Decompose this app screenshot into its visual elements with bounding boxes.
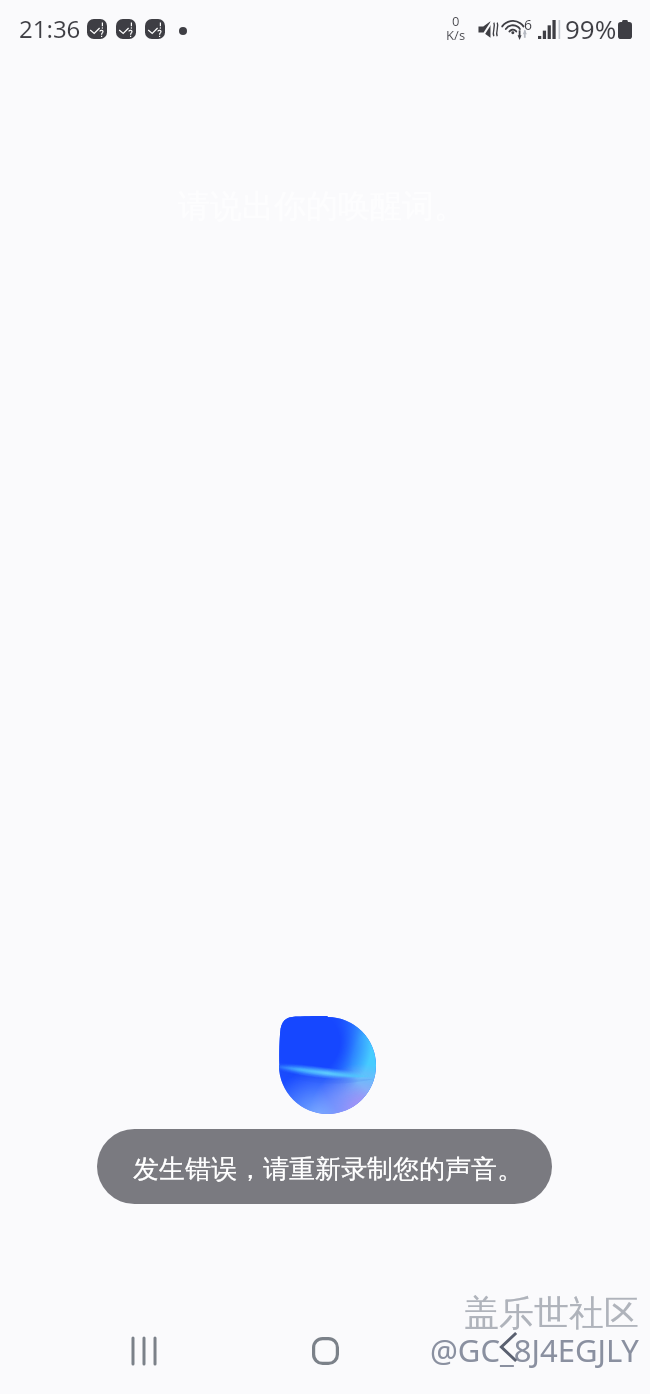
button[interactable]: Recents [113, 1321, 173, 1381]
button[interactable]: Voice assistant [279, 1016, 376, 1115]
staticText: 发生错误，请重新录制您的声音。 [133, 1153, 523, 1186]
button[interactable]: Home [295, 1321, 355, 1381]
staticText: 99% [565, 11, 617, 46]
staticText: K/s [446, 26, 466, 44]
button[interactable]: Back [480, 1319, 536, 1375]
staticText: 0 [452, 12, 460, 30]
staticText: 6 [524, 15, 533, 34]
staticText: 盖乐世社区 [464, 1291, 639, 1335]
button[interactable]: 发生错误，请重新录制您的声音。 [97, 1129, 552, 1204]
staticText: @GC_8J4EGJLY [430, 1329, 639, 1371]
staticText: 21:36 [19, 12, 81, 45]
